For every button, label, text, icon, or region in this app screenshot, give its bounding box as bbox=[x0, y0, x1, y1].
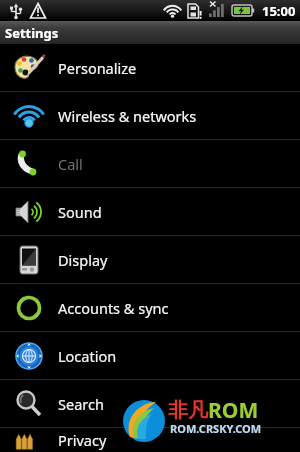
staticText: Sound bbox=[58, 202, 102, 222]
staticText: 15:00 bbox=[262, 2, 296, 20]
staticText: Wireless & networks bbox=[58, 106, 197, 126]
staticText: ROM.CRSKY.COM bbox=[170, 421, 262, 436]
button[interactable]: Privacy bbox=[0, 428, 300, 452]
staticText: Search bbox=[58, 394, 104, 414]
staticText: Display bbox=[58, 250, 108, 270]
button[interactable]: Location bbox=[0, 332, 300, 380]
button[interactable]: Accounts & sync bbox=[0, 284, 300, 332]
staticText: Personalize bbox=[58, 58, 137, 78]
button[interactable]: Sound bbox=[0, 188, 300, 236]
button[interactable]: Wireless & networks bbox=[0, 92, 300, 140]
staticText: Call bbox=[58, 154, 83, 174]
staticText: Accounts & sync bbox=[58, 298, 169, 318]
staticText: 非凡 bbox=[168, 398, 208, 423]
button[interactable]: Search bbox=[0, 380, 300, 428]
button[interactable]: Call bbox=[0, 140, 300, 188]
staticText: ROM bbox=[208, 396, 259, 425]
staticText: Location bbox=[58, 346, 117, 366]
staticText: Privacy bbox=[58, 430, 107, 450]
staticText: Settings bbox=[5, 24, 59, 42]
button[interactable]: Display bbox=[0, 236, 300, 284]
button[interactable]: Personalize bbox=[0, 44, 300, 92]
